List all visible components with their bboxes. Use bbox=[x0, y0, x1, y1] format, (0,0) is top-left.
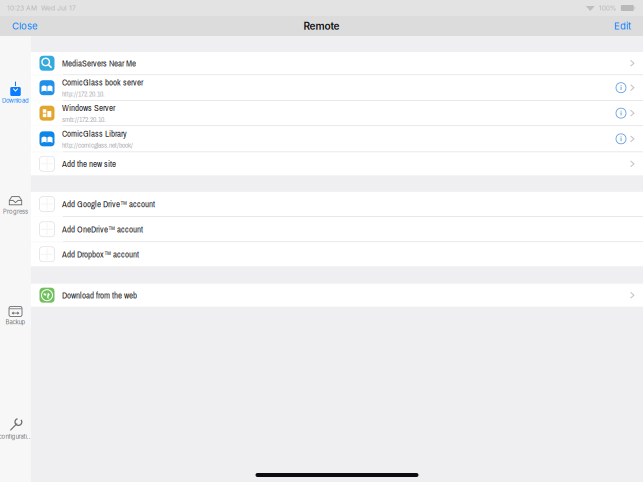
button[interactable]: Add Dropbox™ account bbox=[31, 242, 643, 266]
staticText: Backup bbox=[5, 318, 25, 326]
button[interactable]: ComicGlass book server bbox=[31, 75, 643, 100]
button[interactable]: configurati... bbox=[0, 417, 31, 439]
staticText: Add OneDrive™ account bbox=[62, 223, 143, 235]
button[interactable]: Windows Server bbox=[31, 101, 643, 125]
staticText: Close bbox=[12, 20, 38, 32]
staticText: Add the new site bbox=[62, 158, 116, 170]
button[interactable]: More info bbox=[615, 107, 627, 119]
staticText: smb://172.20.10. bbox=[62, 114, 106, 124]
button[interactable]: Add OneDrive™ account bbox=[31, 217, 643, 241]
button[interactable]: Download bbox=[0, 81, 31, 103]
button[interactable]: MediaServers Near Me bbox=[31, 52, 643, 74]
staticText: Remote bbox=[303, 20, 339, 32]
staticText: ComicGlass book server bbox=[62, 76, 143, 88]
button[interactable]: Download from the web bbox=[31, 284, 643, 307]
button[interactable]: Add Google Drive™ account bbox=[31, 192, 643, 216]
staticText: Add Google Drive™ account bbox=[62, 198, 155, 210]
staticText: 10:23 AM Wed Jul 17 bbox=[7, 4, 76, 12]
staticText: Add Dropbox™ account bbox=[62, 248, 139, 260]
button[interactable]: Edit bbox=[614, 16, 643, 36]
staticText: Download bbox=[2, 97, 29, 104]
staticText: MediaServers Near Me bbox=[62, 57, 136, 69]
staticText: http://comicglass.net/book/ bbox=[62, 140, 133, 150]
button[interactable]: ComicGlass Library bbox=[31, 126, 643, 152]
staticText: Edit bbox=[614, 20, 631, 32]
button[interactable]: More info bbox=[615, 82, 627, 94]
staticText: Windows Server bbox=[62, 102, 115, 114]
staticText: Download from the web bbox=[62, 289, 137, 301]
button[interactable]: Close bbox=[0, 16, 38, 36]
button[interactable]: Backup bbox=[0, 305, 31, 325]
staticText: ComicGlass Library bbox=[62, 128, 127, 139]
staticText: configurati... bbox=[0, 433, 32, 440]
staticText: 100% bbox=[599, 4, 617, 12]
button[interactable]: Add the new site bbox=[31, 152, 643, 175]
staticText: http://172.20.10. bbox=[62, 89, 105, 99]
staticText: Progress bbox=[3, 208, 28, 215]
button[interactable]: More info bbox=[615, 133, 627, 145]
button[interactable]: Progress bbox=[0, 194, 31, 214]
